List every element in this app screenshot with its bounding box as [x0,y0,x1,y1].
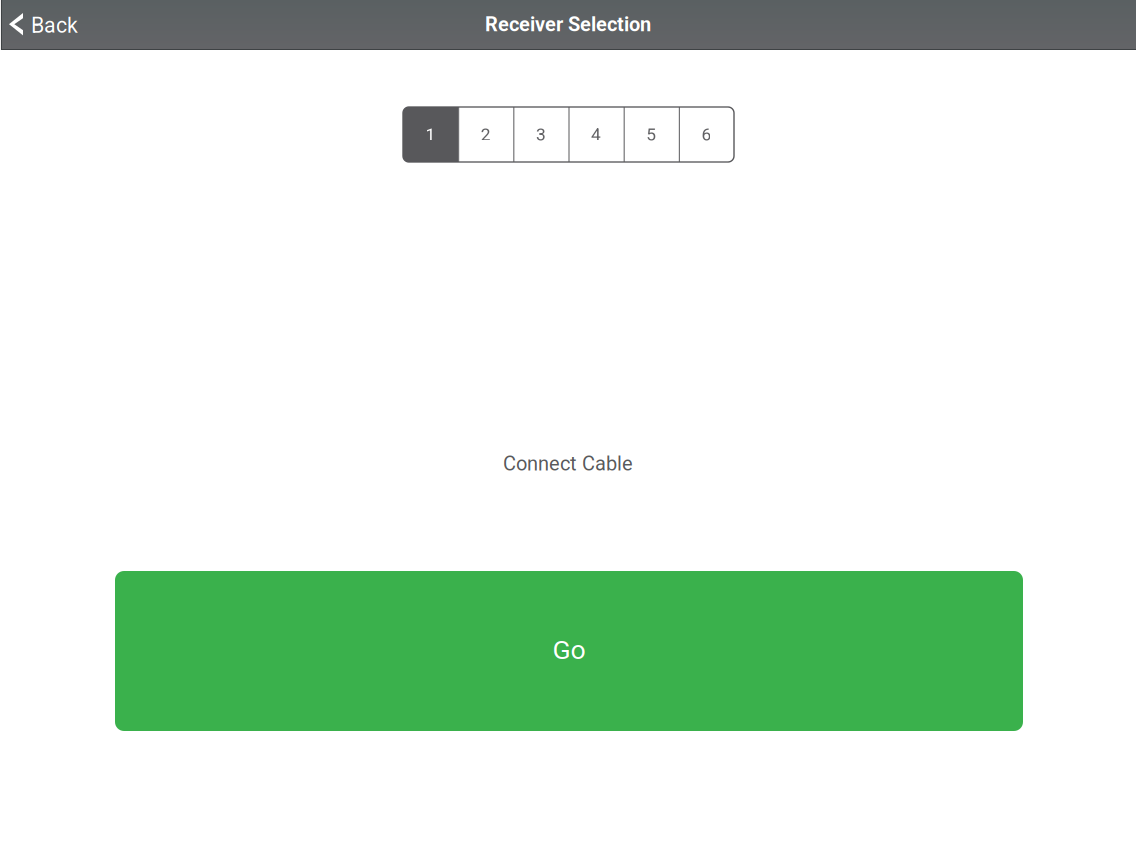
staticText: 2 [481,124,491,145]
staticText: Connect Cable [503,452,633,475]
staticText: 5 [646,124,656,145]
staticText: 1 [426,124,436,145]
button[interactable]: 6 [679,107,734,162]
staticText: Back [31,13,78,38]
button[interactable]: Back [0,0,94,49]
button[interactable]: 5 [624,107,679,162]
button[interactable]: 1 [403,107,458,162]
staticText: Go [552,634,585,666]
button[interactable]: 4 [568,107,624,162]
button[interactable]: Go [115,571,1023,731]
button[interactable]: 2 [458,107,513,162]
button[interactable]: 3 [513,107,568,162]
staticText: Receiver Selection [485,13,651,36]
staticText: 3 [536,124,546,145]
staticText: 6 [701,124,711,145]
staticText: 4 [591,124,601,145]
